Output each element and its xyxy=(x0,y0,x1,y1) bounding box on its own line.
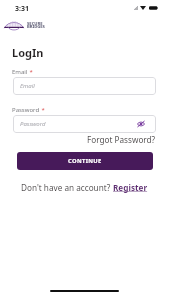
staticText: Email xyxy=(20,82,35,90)
staticText: Don't have an account? xyxy=(21,182,113,193)
staticText: SECURE xyxy=(27,21,43,27)
button[interactable]: Email xyxy=(13,77,156,95)
staticText: Password xyxy=(20,120,46,128)
staticText: * xyxy=(40,106,45,114)
staticText: CONTINUE xyxy=(68,157,102,165)
staticText: 3:31 xyxy=(15,4,29,14)
button[interactable]: Register xyxy=(113,182,148,193)
button[interactable]: CONTINUE xyxy=(17,152,153,170)
staticText: Email xyxy=(12,68,28,76)
staticText: * xyxy=(28,68,33,76)
staticText: LogIn xyxy=(12,45,44,60)
button[interactable]: Show password xyxy=(135,118,147,130)
staticText: Password xyxy=(12,106,40,114)
button[interactable]: Password xyxy=(13,115,156,133)
staticText: BRIDGES xyxy=(27,24,45,30)
button[interactable]: Forgot Password? xyxy=(87,134,156,145)
